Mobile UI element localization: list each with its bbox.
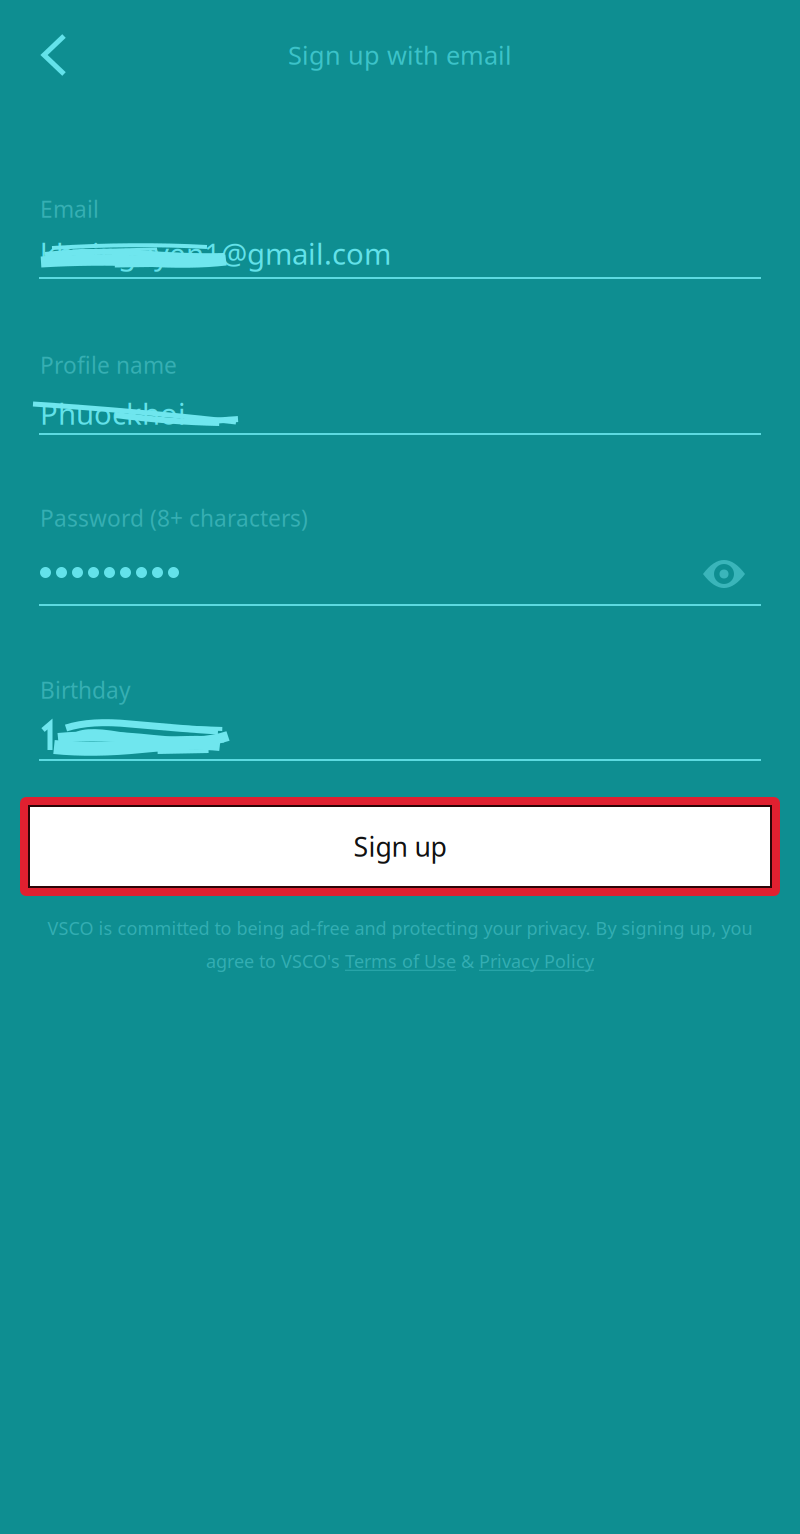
staticText: Phuockhoi [40, 394, 186, 433]
staticText: & [456, 949, 479, 973]
staticText: Password (8+ characters) [40, 503, 308, 533]
staticText: Sign up [353, 829, 446, 864]
staticText: Birthday [40, 675, 131, 705]
staticText: Profile name [40, 350, 177, 380]
button[interactable]: Back [13, 13, 97, 97]
button[interactable]: Show password [688, 543, 760, 605]
staticText: VSCO is committed to being ad-free and p… [47, 916, 752, 940]
staticText: Sign up with email [288, 38, 512, 72]
staticText: khoinguyen1@gmail.com [40, 234, 391, 273]
button[interactable]: Sign up [30, 807, 770, 886]
staticText: agree to VSCO's [206, 949, 345, 973]
staticText: Email [40, 194, 99, 224]
staticText: Terms of Use [345, 949, 456, 973]
staticText: Privacy Policy [479, 949, 594, 973]
